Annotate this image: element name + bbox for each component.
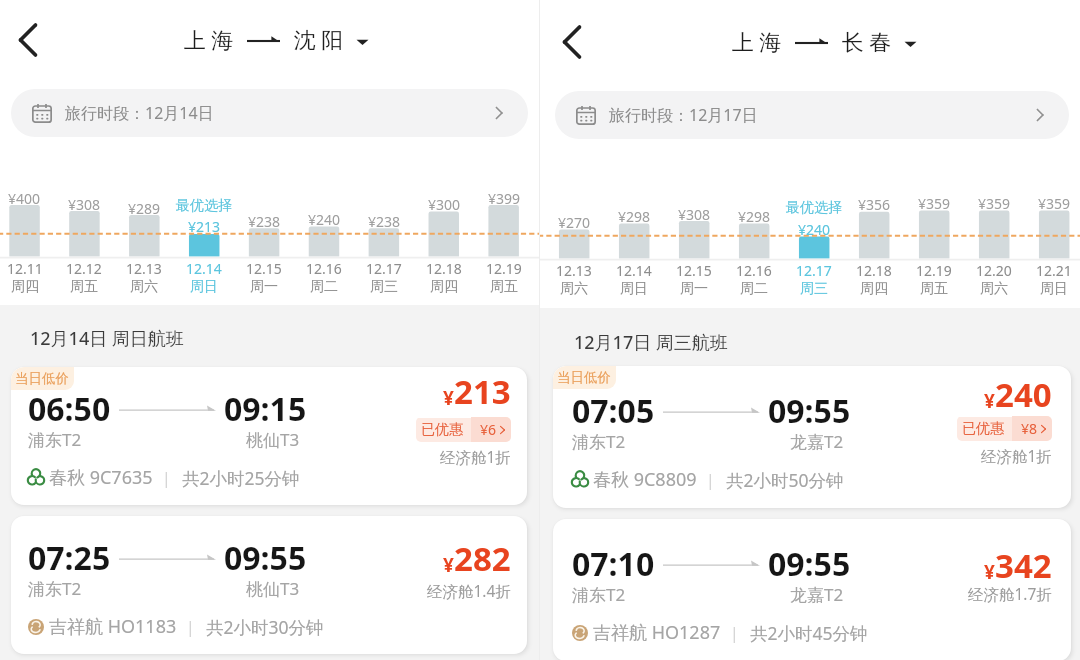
staticText: 浦东T2 [572, 430, 626, 453]
button[interactable]: 上海 [729, 24, 917, 62]
staticText: 沈阳 [291, 27, 346, 55]
staticText: ¥359 [978, 194, 1011, 213]
staticText: 周六 [560, 280, 588, 298]
staticText: 周五 [70, 278, 98, 296]
staticText: 周四 [860, 280, 888, 298]
staticText: 吉祥航 HO1183 [49, 614, 177, 639]
staticText: ¥270 [558, 213, 591, 232]
staticText: 07:25 [28, 536, 111, 580]
button[interactable]: 已优惠 [957, 416, 1052, 441]
staticText: 周日 [190, 278, 218, 296]
staticText: 最优选择 [176, 197, 232, 215]
staticText: 12.18 [856, 261, 892, 280]
staticText: 12.16 [306, 259, 342, 278]
staticText: 龙嘉T2 [790, 583, 844, 606]
staticText: 当日低价 [15, 370, 69, 387]
staticText: 周一 [680, 280, 708, 298]
staticText: 经济舱1折 [440, 446, 511, 467]
staticText: 经济舱1.7折 [968, 583, 1052, 604]
button[interactable]: 当日低价 [553, 366, 1071, 508]
staticText: ¥ [443, 552, 454, 578]
staticText: 12.13 [126, 259, 162, 278]
staticText: ¥ [984, 388, 995, 414]
staticText: 12月17日 周三航班 [574, 330, 728, 355]
staticText: 吉祥航 HO1287 [593, 620, 721, 645]
staticText: 周二 [310, 278, 338, 296]
staticText: 周六 [130, 278, 158, 296]
staticText: | [706, 469, 715, 491]
button[interactable]: 07:25 [11, 516, 527, 654]
staticText: 周日 [620, 280, 648, 298]
staticText: ¥399 [488, 189, 521, 208]
staticText: ¥359 [918, 194, 951, 213]
staticText: ¥300 [428, 195, 461, 214]
staticText: 12.15 [246, 259, 282, 278]
staticText: 09:15 [224, 387, 307, 431]
staticText: ¥298 [738, 207, 771, 226]
staticText: 07:10 [572, 542, 655, 586]
staticText: 周六 [980, 280, 1008, 298]
staticText: 上海 [729, 29, 784, 57]
button[interactable]: 上海 [181, 22, 369, 60]
staticText: | [186, 616, 195, 638]
staticText: 12月14日 周日航班 [30, 326, 184, 351]
staticText: 周四 [430, 278, 458, 296]
button[interactable]: 旅行时段：12月17日 [555, 91, 1069, 139]
staticText: ¥308 [678, 205, 711, 224]
staticText: 12.13 [556, 261, 592, 280]
staticText: ¥240 [308, 210, 341, 229]
staticText: 12.17 [796, 261, 832, 280]
staticText: 240 [995, 372, 1052, 417]
staticText: ¥238 [368, 212, 401, 231]
staticText: 09:55 [768, 389, 851, 433]
staticText: 09:55 [224, 536, 307, 580]
button[interactable]: Back [7, 20, 47, 60]
staticText: 12.14 [616, 261, 652, 280]
staticText: 周日 [1040, 280, 1068, 298]
staticText: 经济舱1折 [981, 445, 1052, 466]
staticText: 周五 [490, 278, 518, 296]
staticText: 12.14 [186, 259, 222, 278]
staticText: 12.19 [486, 259, 522, 278]
staticText: ¥213 [188, 217, 221, 236]
staticText: 12.11 [7, 259, 43, 278]
staticText: 12.15 [676, 261, 712, 280]
staticText: 共2小时45分钟 [750, 621, 868, 645]
button[interactable]: 07:10 [553, 519, 1071, 660]
staticText: ¥8 [1021, 419, 1038, 438]
staticText: ¥238 [248, 212, 281, 231]
staticText: 浦东T2 [572, 583, 626, 606]
staticText: 342 [995, 543, 1052, 588]
staticText: 浦东T2 [28, 577, 82, 600]
staticText: 06:50 [28, 387, 111, 431]
staticText: 已优惠 [962, 420, 1004, 438]
staticText: 共2小时25分钟 [182, 466, 300, 490]
staticText: 龙嘉T2 [790, 430, 844, 453]
staticText: 春秋 9C8809 [593, 467, 697, 492]
staticText: 周四 [11, 278, 39, 296]
staticText: 12.18 [426, 259, 462, 278]
staticText: 上海 [181, 27, 236, 55]
button[interactable]: 已优惠 [416, 417, 511, 442]
staticText: 12.17 [366, 259, 402, 278]
staticText: 12.16 [736, 261, 772, 280]
button[interactable]: Back [551, 22, 591, 62]
button[interactable]: 旅行时段：12月14日 [11, 89, 528, 137]
staticText: 12.12 [66, 259, 102, 278]
staticText: 共2小时30分钟 [206, 615, 324, 639]
staticText: ¥240 [798, 220, 831, 239]
staticText: 浦东T2 [28, 428, 82, 451]
staticText: 12.21 [1036, 261, 1072, 280]
staticText: 长春 [839, 29, 894, 57]
staticText: 旅行时段：12月14日 [65, 102, 214, 124]
staticText: 经济舱1.4折 [427, 580, 511, 601]
staticText: 旅行时段：12月17日 [609, 104, 758, 126]
staticText: ¥400 [8, 189, 41, 208]
staticText: 周二 [740, 280, 768, 298]
staticText: 213 [454, 369, 511, 414]
staticText: ¥298 [618, 207, 651, 226]
button[interactable]: 当日低价 [11, 367, 527, 505]
staticText: | [162, 467, 171, 489]
staticText: 当日低价 [557, 369, 611, 386]
staticText: 周三 [800, 280, 828, 298]
